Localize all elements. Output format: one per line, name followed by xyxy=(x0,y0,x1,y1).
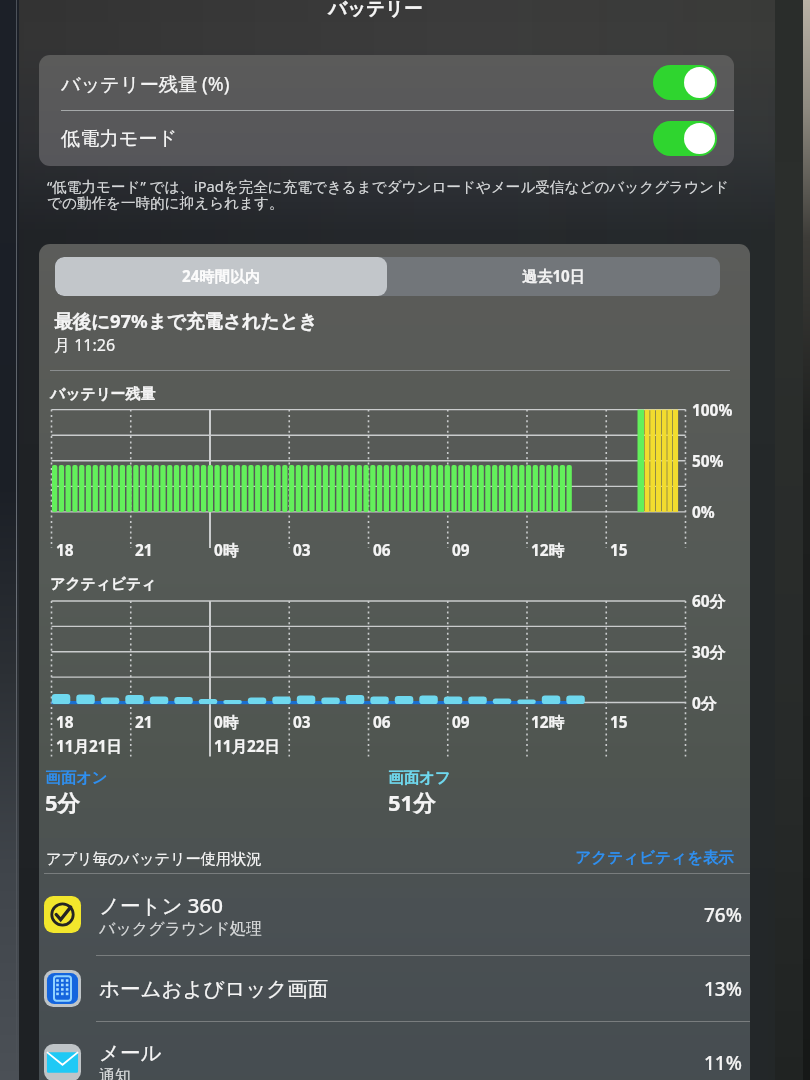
button[interactable]: ホームおよびロック画面 xyxy=(39,956,750,1021)
button[interactable]: 低電力モード xyxy=(39,111,734,166)
staticText: 12時 xyxy=(531,712,564,733)
staticText: 最後に97%まで充電されたとき xyxy=(54,308,318,333)
staticText: 15 xyxy=(610,712,628,733)
staticText: バッテリー残量 (%) xyxy=(61,70,230,96)
staticText: 13% xyxy=(704,976,742,1002)
staticText: アクティビティ xyxy=(50,575,157,594)
staticText: “低電力モード” では、iPadを完全に充電できるまでダウンロードやメール受信な… xyxy=(47,176,729,212)
staticText: バッテリー残量 xyxy=(50,385,155,404)
staticText: ホームおよびロック画面 xyxy=(99,976,329,1002)
staticText: 11月21日 xyxy=(56,736,122,757)
staticText: アクティビティを表示 xyxy=(575,848,734,868)
staticText: 過去10日 xyxy=(522,266,585,287)
staticText: 06 xyxy=(373,712,391,733)
staticText: 18 xyxy=(56,540,74,561)
staticText: 09 xyxy=(452,540,470,561)
staticText: 21 xyxy=(135,540,153,561)
staticText: バッテリー xyxy=(328,0,423,20)
staticText: 低電力モード xyxy=(61,127,178,151)
staticText: 0時 xyxy=(214,712,239,733)
staticText: 11% xyxy=(704,1050,742,1076)
button[interactable]: 24時間以内 xyxy=(55,257,387,296)
staticText: 03 xyxy=(293,540,311,561)
staticText: 11月22日 xyxy=(214,736,280,757)
staticText: 24時間以内 xyxy=(182,266,261,287)
staticText: 30分 xyxy=(692,642,725,663)
staticText: 5分 xyxy=(45,787,80,817)
staticText: アプリ毎のバッテリー使用状況 xyxy=(46,849,262,868)
staticText: 03 xyxy=(293,712,311,733)
button[interactable]: 過去10日 xyxy=(387,257,720,296)
staticText: 12時 xyxy=(531,540,564,561)
staticText: 通知 xyxy=(99,1066,131,1080)
staticText: 100% xyxy=(692,400,733,421)
staticText: 51分 xyxy=(388,787,436,817)
staticText: 18 xyxy=(56,712,74,733)
staticText: 15 xyxy=(610,540,628,561)
staticText: メール xyxy=(99,1040,162,1066)
staticText: 画面オフ xyxy=(388,768,451,787)
staticText: 60分 xyxy=(692,591,725,612)
staticText: 21 xyxy=(135,712,153,733)
staticText: 09 xyxy=(452,712,470,733)
staticText: 06 xyxy=(373,540,391,561)
staticText: 0時 xyxy=(214,540,239,561)
staticText: ノートン 360 xyxy=(99,891,223,919)
staticText: 76% xyxy=(704,902,742,928)
staticText: 月 11:26 xyxy=(54,334,116,356)
staticText: 50% xyxy=(692,451,724,472)
staticText: 0分 xyxy=(692,693,717,714)
button[interactable]: メール xyxy=(39,1022,750,1080)
staticText: 画面オン xyxy=(45,768,108,787)
button[interactable]: ノートン 360 xyxy=(39,874,750,955)
staticText: 0% xyxy=(692,502,715,523)
staticText: バックグラウンド処理 xyxy=(99,919,262,939)
button[interactable]: アクティビティを表示 xyxy=(575,848,734,868)
button[interactable]: バッテリー残量 (%) xyxy=(39,55,734,110)
